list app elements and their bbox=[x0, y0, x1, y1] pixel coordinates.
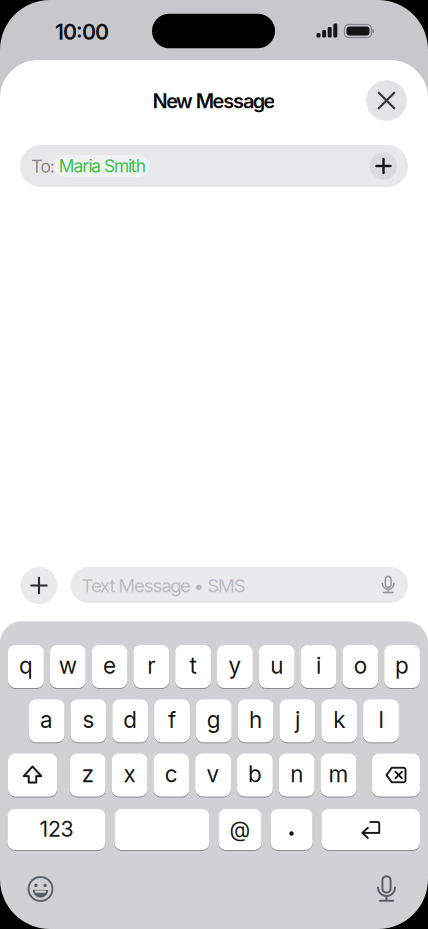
button[interactable]: p bbox=[384, 645, 420, 688]
staticText: n bbox=[290, 761, 303, 787]
staticText: u bbox=[270, 652, 283, 679]
staticText: e bbox=[103, 652, 116, 679]
button[interactable]: q bbox=[8, 645, 44, 688]
button[interactable]: Apps bbox=[20, 567, 57, 604]
button[interactable]: @ bbox=[218, 809, 261, 850]
button[interactable]: k bbox=[321, 699, 357, 742]
button[interactable]: b bbox=[237, 753, 273, 796]
button[interactable]: Close bbox=[366, 80, 407, 121]
staticText: Text Message • SMS bbox=[81, 574, 246, 596]
button[interactable]: Numbers bbox=[7, 809, 105, 850]
staticText: i bbox=[316, 652, 321, 679]
button[interactable]: . bbox=[270, 809, 312, 850]
staticText: w bbox=[59, 652, 77, 679]
button[interactable]: e bbox=[92, 645, 127, 688]
button[interactable]: x bbox=[112, 753, 147, 796]
button[interactable]: a bbox=[29, 699, 64, 742]
button[interactable]: n bbox=[279, 753, 315, 796]
button[interactable]: j bbox=[279, 699, 315, 742]
staticText: p bbox=[395, 652, 409, 679]
button[interactable]: Return bbox=[321, 809, 420, 850]
button[interactable]: Maria Smith bbox=[54, 155, 149, 177]
button[interactable]: y bbox=[217, 645, 253, 688]
button[interactable]: w bbox=[50, 645, 86, 688]
button[interactable]: v bbox=[195, 753, 231, 796]
button[interactable]: t bbox=[175, 645, 211, 688]
staticText: k bbox=[333, 706, 345, 733]
staticText: 123 bbox=[39, 816, 73, 842]
staticText: r bbox=[147, 652, 155, 679]
staticText: @ bbox=[229, 817, 250, 842]
staticText: q bbox=[19, 652, 33, 679]
button[interactable]: c bbox=[153, 753, 189, 796]
staticText: Maria Smith bbox=[59, 156, 146, 176]
staticText: m bbox=[328, 761, 348, 787]
staticText: To: bbox=[31, 156, 55, 177]
staticText: y bbox=[228, 652, 241, 679]
staticText: x bbox=[123, 761, 135, 787]
button[interactable]: m bbox=[321, 753, 356, 796]
button[interactable]: Text Message bbox=[70, 567, 408, 603]
button[interactable]: Delete bbox=[372, 753, 420, 796]
button[interactable]: u bbox=[259, 645, 295, 688]
staticText: h bbox=[249, 706, 262, 733]
staticText: v bbox=[207, 761, 220, 787]
button[interactable]: Dictation bbox=[371, 873, 401, 903]
button[interactable]: Space bbox=[114, 809, 209, 850]
staticText: s bbox=[82, 706, 94, 733]
staticText: j bbox=[295, 706, 300, 733]
button[interactable]: z bbox=[70, 753, 106, 796]
button[interactable]: Emoji bbox=[25, 874, 55, 904]
button[interactable]: h bbox=[238, 699, 273, 742]
staticText: b bbox=[248, 761, 262, 787]
staticText: l bbox=[378, 706, 383, 733]
button[interactable]: s bbox=[70, 699, 106, 742]
staticText: a bbox=[40, 706, 53, 733]
staticText: o bbox=[354, 652, 367, 679]
button[interactable]: l bbox=[363, 699, 399, 742]
button[interactable]: Dictate bbox=[374, 568, 402, 600]
staticText: t bbox=[190, 652, 197, 679]
button[interactable]: r bbox=[133, 645, 169, 688]
staticText: d bbox=[123, 706, 137, 733]
button[interactable]: g bbox=[196, 699, 232, 742]
staticText: c bbox=[165, 761, 178, 787]
button[interactable]: Shift bbox=[8, 753, 57, 796]
staticText: z bbox=[82, 761, 94, 787]
staticText: 10:00 bbox=[55, 19, 109, 45]
button[interactable]: o bbox=[342, 645, 378, 688]
staticText: f bbox=[168, 706, 176, 733]
button[interactable]: f bbox=[154, 699, 190, 742]
staticText: New Message bbox=[152, 89, 275, 113]
button[interactable]: d bbox=[112, 699, 148, 742]
staticText: g bbox=[207, 706, 221, 733]
button[interactable]: Add Contact bbox=[370, 152, 397, 180]
button[interactable]: i bbox=[301, 645, 336, 688]
